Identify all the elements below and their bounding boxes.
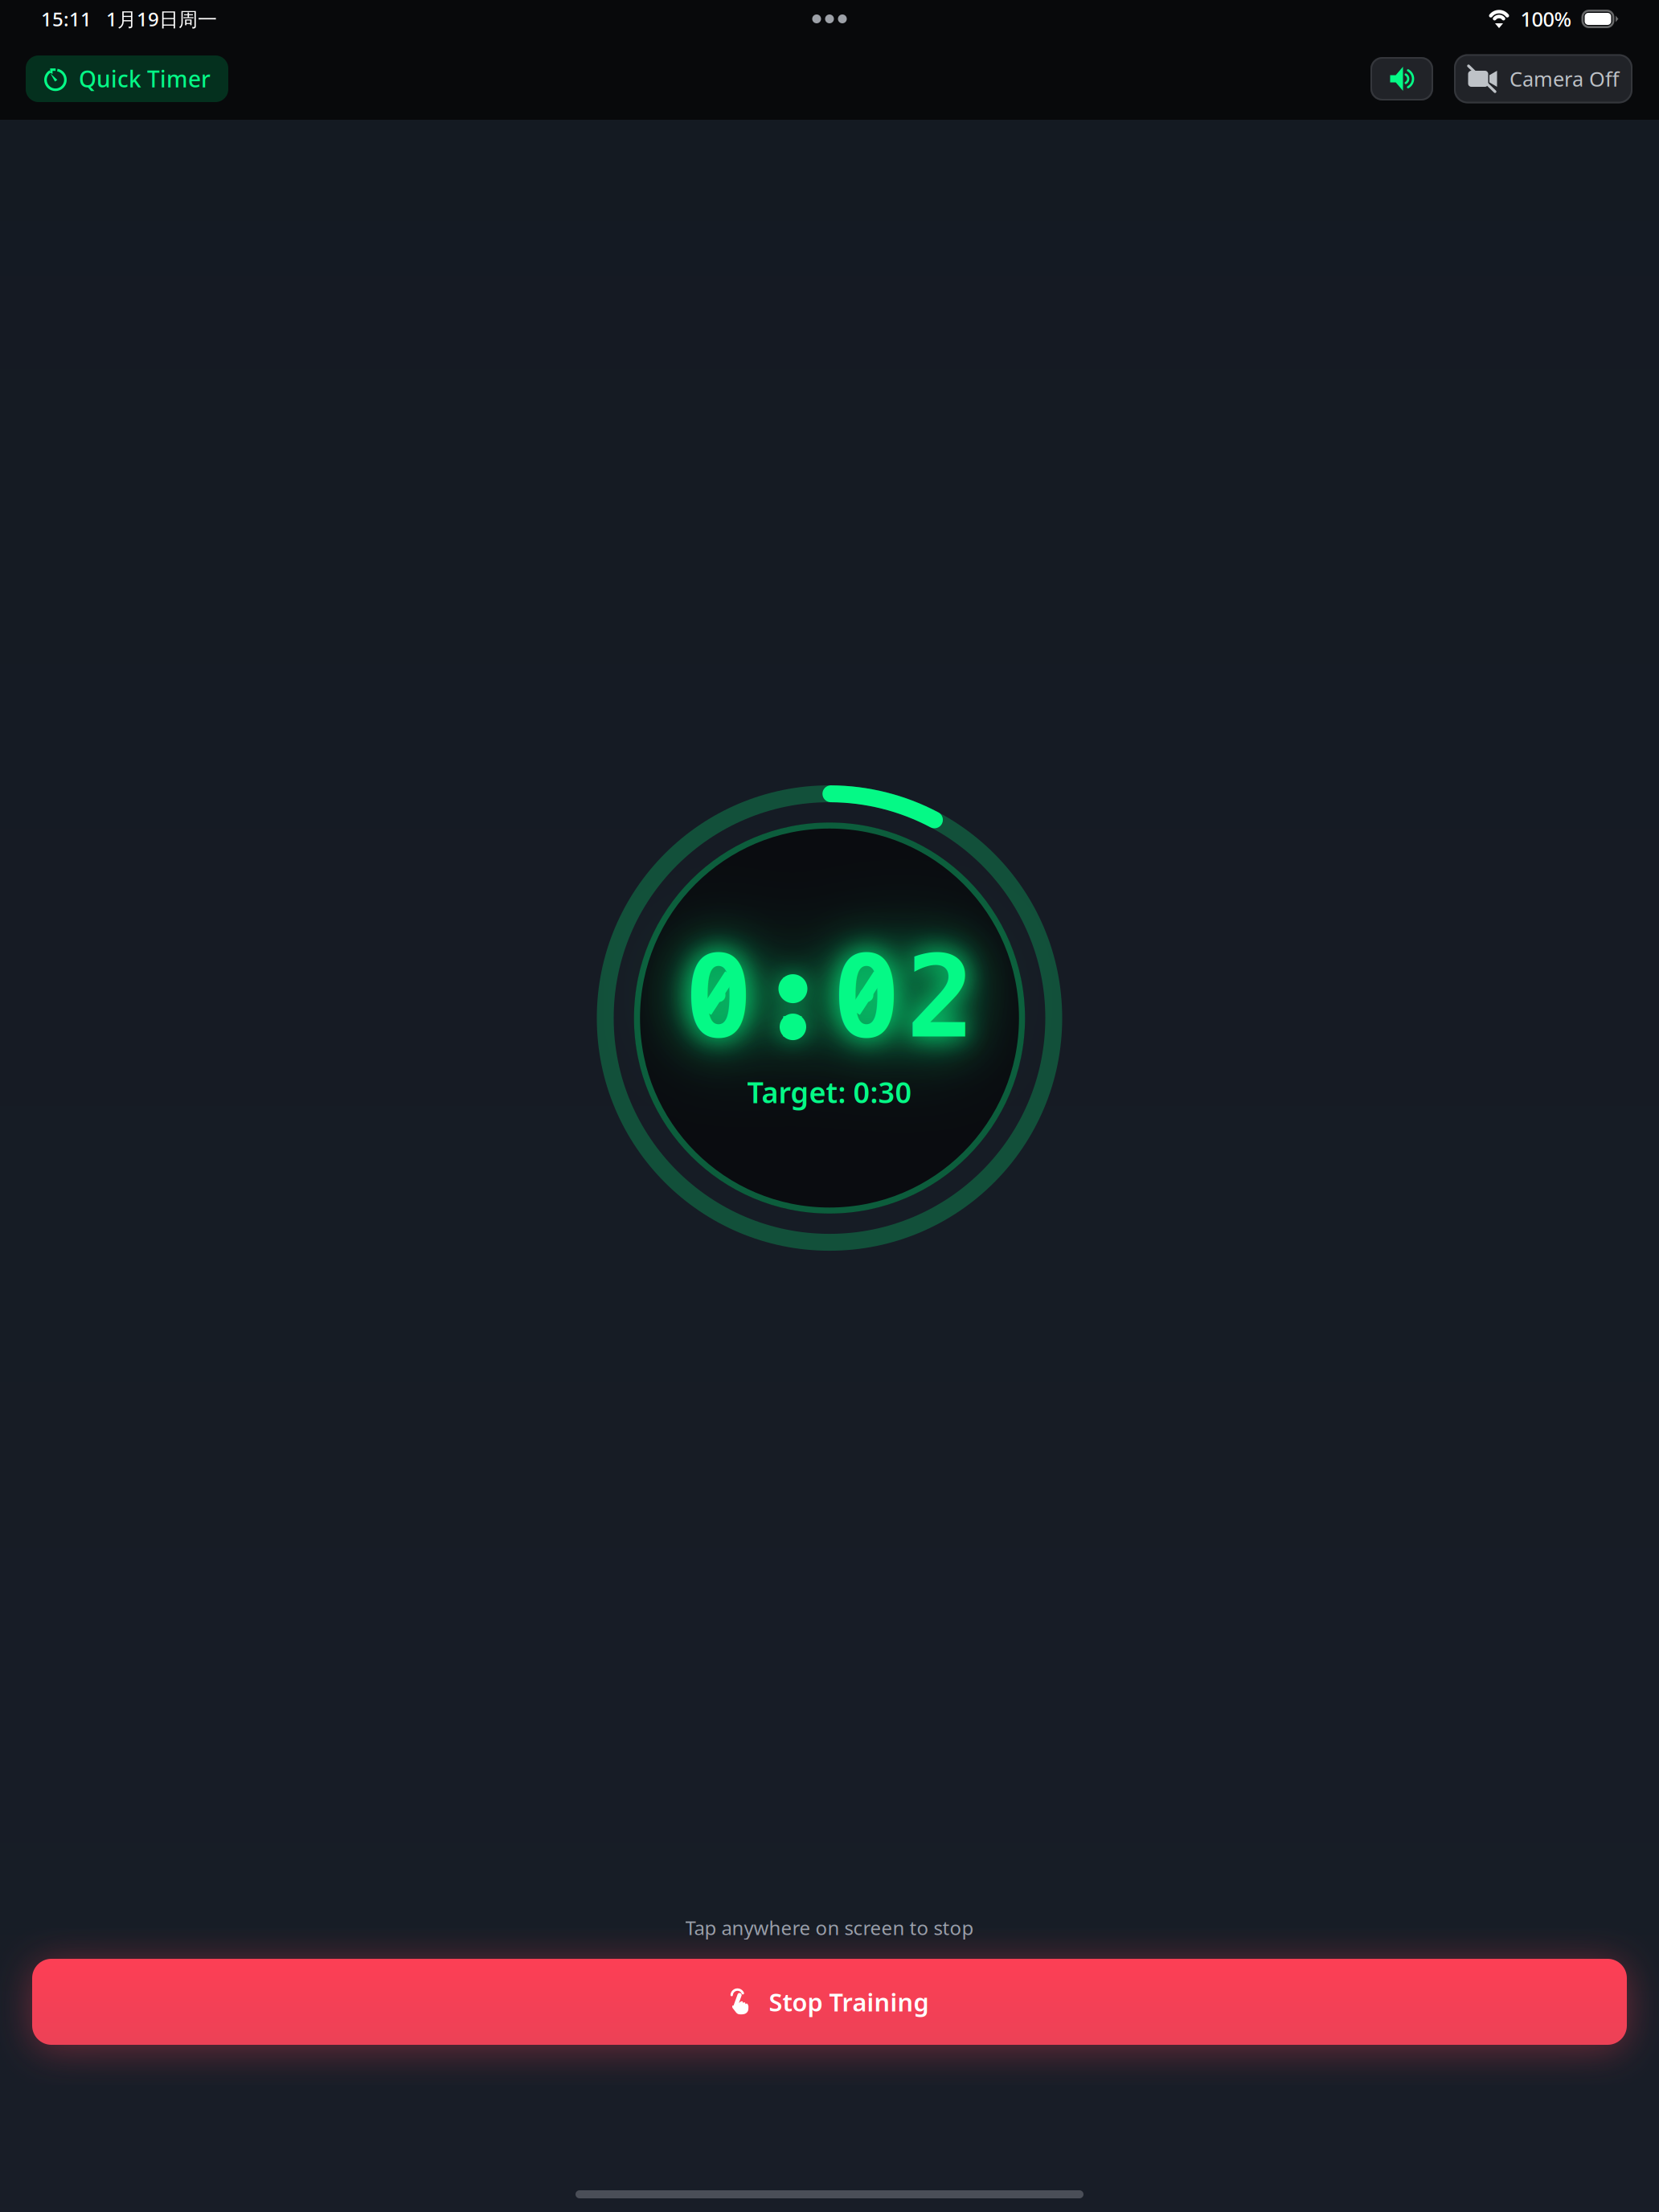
staticText: 100% <box>1520 5 1572 32</box>
staticText: Camera Off <box>1509 65 1619 92</box>
staticText: Quick Timer <box>79 64 211 94</box>
staticText: 15:11 1月19日周一 <box>41 6 217 32</box>
button[interactable]: Sound on <box>1370 57 1433 100</box>
button[interactable]: Quick Timer <box>26 55 228 102</box>
staticText: Target: 0:30 <box>747 1073 912 1111</box>
staticText: Stop Training <box>769 1985 929 2018</box>
staticText: Tap anywhere on screen to stop <box>685 1915 974 1940</box>
staticText: 0:02 <box>684 933 975 1062</box>
button[interactable]: Camera Off <box>1454 54 1632 103</box>
button[interactable]: Stop Training <box>32 1959 1627 2045</box>
